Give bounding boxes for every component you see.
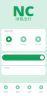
button[interactable]: Tab [35,82,47,96]
staticText: NC [12,1,34,20]
button[interactable]: Tab [12,82,24,96]
button[interactable]: Action [16,36,31,45]
button[interactable]: Tab [0,82,12,96]
button[interactable]: Action [31,36,45,45]
button[interactable]: Continue [1,54,45,60]
staticText: 绿色出行 [15,16,31,21]
button[interactable]: Tab [23,82,35,96]
button[interactable]: Action [1,36,16,45]
